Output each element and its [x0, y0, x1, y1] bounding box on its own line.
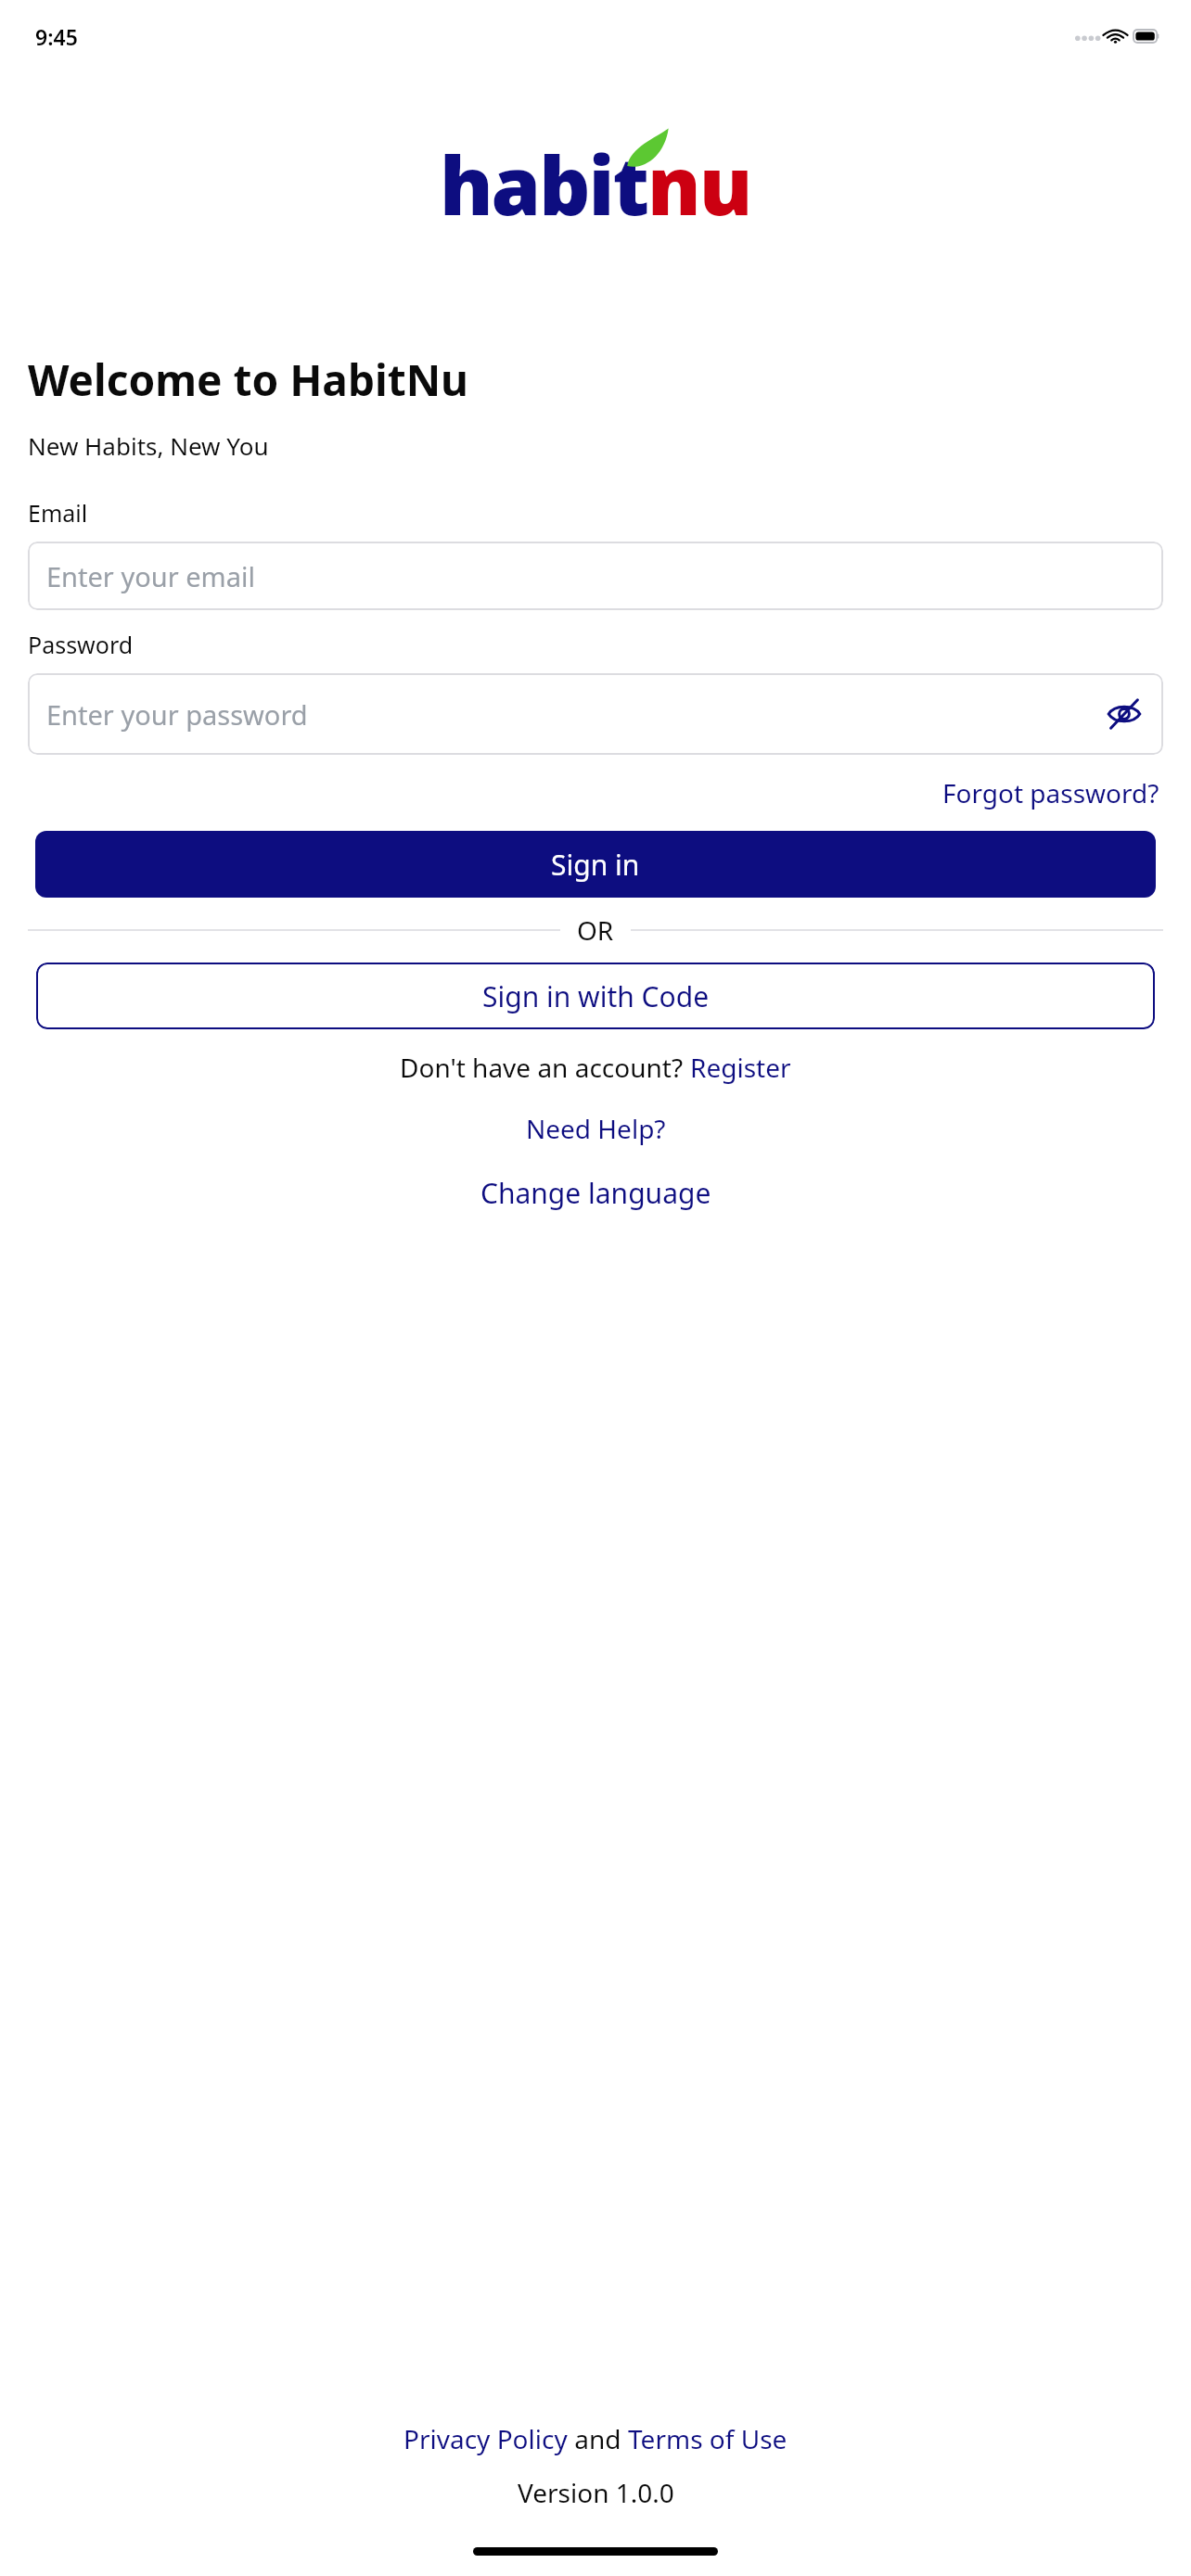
button[interactable]: Register: [690, 1050, 791, 1085]
button[interactable]: Privacy Policy: [403, 2421, 568, 2456]
button[interactable]: Forgot password?: [939, 772, 1163, 814]
button[interactable]: Change language: [469, 1170, 723, 1216]
staticText: 9:45: [35, 22, 78, 51]
staticText: habitnu: [440, 130, 751, 219]
button[interactable]: Need Help?: [515, 1107, 677, 1150]
staticText: Welcome to HabitNu: [28, 351, 468, 409]
button[interactable]: Terms of Use: [628, 2421, 788, 2456]
staticText: Enter your email: [46, 558, 255, 594]
staticText: Enter your password: [46, 696, 308, 733]
button[interactable]: Sign in: [35, 831, 1156, 898]
button[interactable]: Enter your email: [28, 542, 1163, 610]
staticText: Sign in: [551, 846, 640, 884]
staticText: Version 1.0.0: [518, 2475, 674, 2510]
button[interactable]: Sign in with Code: [36, 963, 1155, 1029]
button[interactable]: Enter your password: [28, 673, 1163, 755]
staticText: New Habits, New You: [28, 429, 269, 462]
staticText: Sign in with Code: [482, 977, 710, 1015]
staticText: Password: [28, 629, 134, 660]
staticText: Email: [28, 497, 88, 529]
staticText: Change language: [480, 1174, 711, 1212]
staticText: Don't have an account?: [400, 1050, 690, 1085]
staticText: Forgot password?: [942, 775, 1159, 810]
staticText: and: [568, 2421, 628, 2456]
button[interactable]: Show password: [1096, 686, 1152, 742]
staticText: Register: [690, 1050, 791, 1085]
staticText: OR: [577, 912, 614, 948]
staticText: Privacy Policy: [403, 2421, 568, 2456]
staticText: Terms of Use: [628, 2421, 788, 2456]
staticText: Need Help?: [526, 1111, 666, 1146]
